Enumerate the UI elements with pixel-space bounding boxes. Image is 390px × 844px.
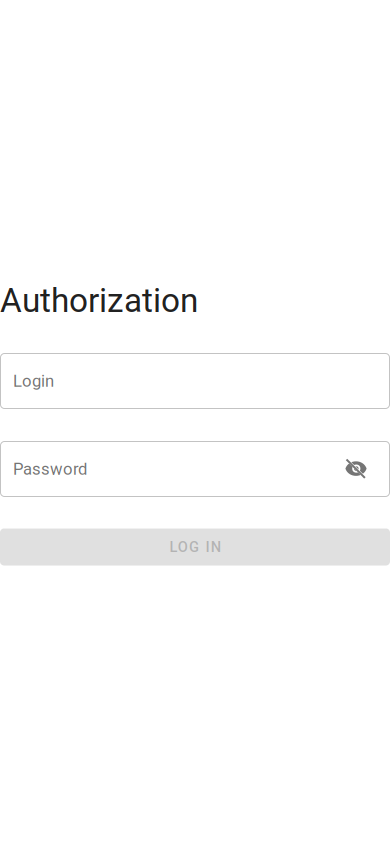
button[interactable]: Show password: [338, 447, 374, 491]
staticText: LOG IN: [169, 538, 221, 556]
button[interactable]: LOG IN: [0, 528, 390, 565]
staticText: Login: [13, 371, 54, 391]
staticText: Password: [13, 459, 87, 479]
staticText: Authorization: [0, 281, 198, 320]
button[interactable]: Login: [0, 353, 389, 408]
